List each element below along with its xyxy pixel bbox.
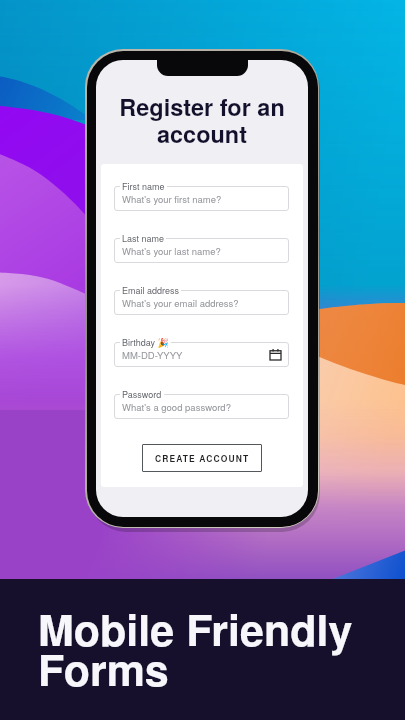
button[interactable]: CREATE ACCOUNT: [142, 444, 262, 472]
button[interactable]: [114, 394, 289, 419]
staticText: Last name: [122, 232, 164, 245]
staticText: Mobile Friendly Forms: [38, 598, 353, 700]
staticText: Register for an account: [104, 90, 300, 150]
staticText: What's your first name?: [122, 192, 222, 206]
button[interactable]: [114, 342, 289, 367]
staticText: Password: [122, 388, 162, 401]
staticText: What's your last name?: [122, 244, 221, 258]
staticText: Birthday 🎉: [122, 336, 169, 349]
button[interactable]: [114, 186, 289, 211]
staticText: MM-DD-YYYY: [122, 348, 183, 362]
staticText: CREATE ACCOUNT: [155, 452, 250, 464]
other: Pick date: [270, 349, 281, 360]
staticText: Email address: [122, 284, 179, 297]
button[interactable]: [114, 238, 289, 263]
button[interactable]: [114, 290, 289, 315]
staticText: First name: [122, 180, 165, 193]
staticText: What's your email address?: [122, 296, 239, 310]
staticText: What's a good password?: [122, 400, 231, 414]
